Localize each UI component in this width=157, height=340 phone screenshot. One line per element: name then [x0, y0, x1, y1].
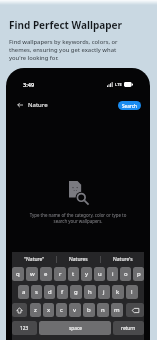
staticText: n: [101, 306, 105, 314]
staticText: v: [73, 306, 77, 314]
staticText: b: [87, 306, 91, 314]
button[interactable]: return: [113, 321, 144, 335]
button[interactable]: "Nature": [12, 252, 56, 267]
button[interactable]: Back: [15, 100, 25, 110]
button[interactable]: f: [57, 285, 68, 299]
button[interactable]: 123: [12, 321, 37, 335]
button[interactable]: a: [18, 285, 29, 299]
staticText: i: [112, 270, 114, 278]
staticText: j: [103, 288, 105, 296]
button[interactable]: z: [30, 303, 41, 317]
button[interactable]: s: [31, 285, 42, 299]
staticText: "Nature": [24, 256, 45, 263]
button[interactable]: b: [83, 303, 95, 317]
staticText: Search: [122, 103, 137, 109]
staticText: g: [74, 288, 78, 296]
staticText: a: [22, 288, 26, 296]
staticText: e: [44, 270, 48, 278]
staticText: space: [69, 325, 82, 332]
button[interactable]: i: [107, 267, 118, 281]
staticText: y: [85, 270, 89, 278]
button[interactable]: x: [43, 303, 54, 317]
button[interactable]: Nature's: [101, 252, 144, 267]
staticText: x: [47, 306, 51, 314]
button[interactable]: y: [81, 267, 92, 281]
staticText: q: [16, 270, 20, 278]
button[interactable]: e: [40, 267, 52, 281]
staticText: Find Perfect Wallpaper: [9, 18, 122, 32]
button[interactable]: j: [98, 285, 110, 299]
button[interactable]: c: [56, 303, 67, 317]
button[interactable]: Search: [118, 101, 141, 110]
staticText: Type the name of the category, color or …: [26, 212, 130, 224]
button[interactable]: q: [12, 267, 24, 281]
staticText: Find wallpapers by keywords, colors, or …: [9, 38, 122, 62]
staticText: l: [131, 288, 133, 296]
staticText: 123: [20, 325, 29, 332]
staticText: t: [72, 270, 75, 278]
button[interactable]: u: [94, 267, 105, 281]
staticText: u: [98, 270, 102, 278]
button[interactable]: g: [70, 285, 82, 299]
button[interactable]: h: [84, 285, 96, 299]
staticText: c: [60, 306, 63, 314]
staticText: return: [121, 325, 136, 332]
staticText: h: [88, 288, 92, 296]
staticText: p: [137, 270, 141, 278]
staticText: Nature: [28, 101, 48, 109]
button[interactable]: t: [68, 267, 79, 281]
staticText: r: [59, 270, 62, 278]
staticText: Nature's: [113, 256, 133, 263]
staticText: k: [116, 288, 120, 296]
staticText: o: [124, 270, 128, 278]
button[interactable]: m: [111, 303, 123, 317]
staticText: f: [61, 288, 64, 296]
button[interactable]: k: [112, 285, 124, 299]
button[interactable]: p: [133, 267, 144, 281]
staticText: s: [35, 288, 38, 296]
button[interactable]: o: [120, 267, 131, 281]
button[interactable]: r: [54, 267, 66, 281]
button[interactable]: d: [44, 285, 55, 299]
button[interactable]: Delete: [126, 303, 144, 317]
button[interactable]: Natures: [57, 252, 100, 267]
button[interactable]: space: [39, 321, 111, 335]
staticText: m: [114, 306, 120, 314]
staticText: z: [34, 306, 37, 314]
button[interactable]: Shift: [12, 303, 27, 317]
staticText: 3:49: [23, 81, 35, 88]
staticText: LTE: [115, 82, 122, 88]
button[interactable]: w: [26, 267, 38, 281]
button[interactable]: v: [69, 303, 81, 317]
staticText: Natures: [69, 256, 88, 263]
button[interactable]: l: [126, 285, 138, 299]
staticText: d: [48, 288, 52, 296]
staticText: w: [30, 270, 35, 278]
button[interactable]: n: [97, 303, 109, 317]
